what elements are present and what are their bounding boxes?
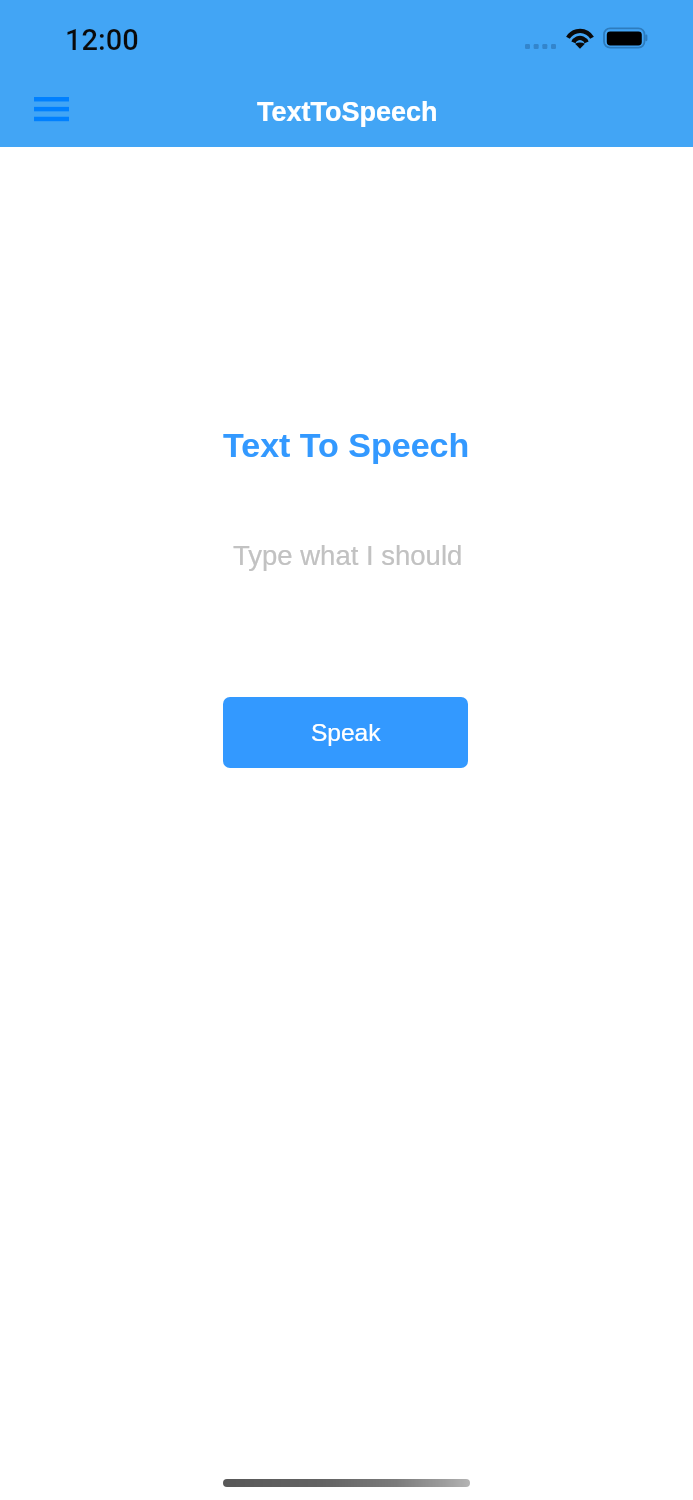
staticText: Type what I should	[233, 540, 463, 571]
staticText: TextToSpeech	[257, 97, 438, 127]
button[interactable]: Speak	[223, 697, 468, 768]
staticText: 12:00	[65, 23, 139, 57]
staticText: Text To Speech	[223, 426, 470, 464]
staticText: Speak	[311, 719, 381, 746]
button[interactable]: Type what I should	[223, 527, 470, 583]
button[interactable]: Open navigation menu	[14, 80, 88, 138]
